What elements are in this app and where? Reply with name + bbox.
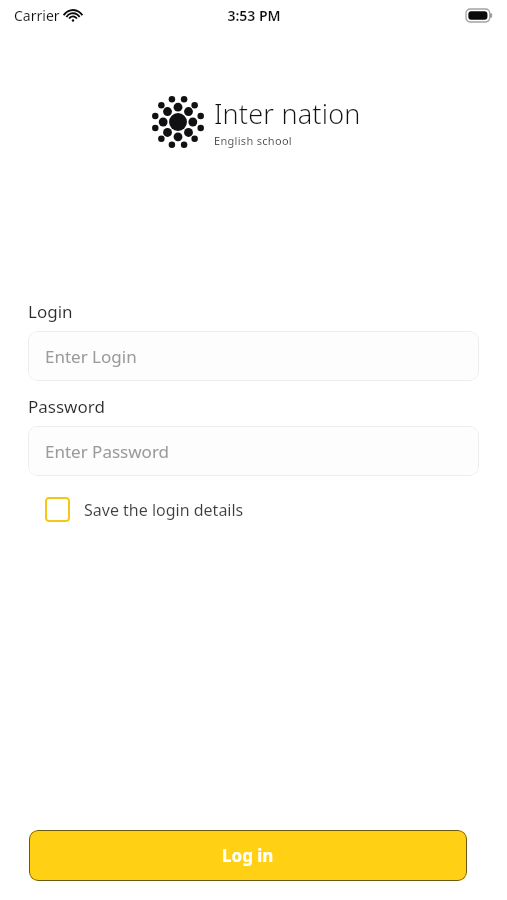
button[interactable]: Save the login details [45, 497, 244, 522]
button[interactable]: Enter Login [28, 331, 479, 381]
staticText: Password [28, 395, 105, 418]
staticText: Inter nation [214, 95, 361, 132]
button[interactable]: Enter Password [28, 426, 479, 476]
staticText: English school [214, 133, 292, 148]
staticText: Save the login details [84, 499, 244, 521]
staticText: Carrier [14, 6, 60, 25]
staticText: Enter Password [45, 440, 170, 463]
staticText: 3:53 PM [227, 6, 281, 25]
staticText: Enter Login [45, 345, 137, 368]
staticText: Log in [222, 844, 274, 867]
staticText: Login [28, 300, 73, 323]
button[interactable]: Log in [29, 830, 467, 881]
